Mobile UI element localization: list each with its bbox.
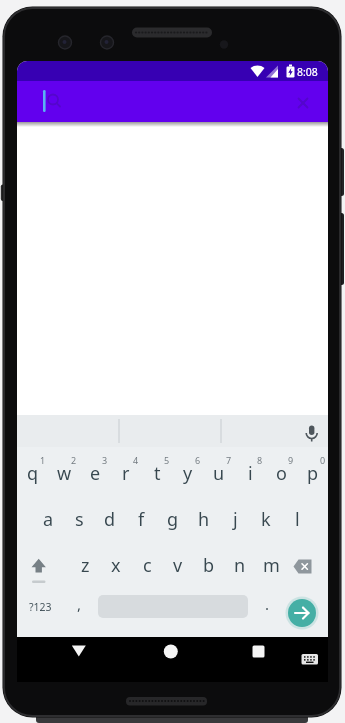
staticText: u — [213, 461, 225, 486]
staticText: 8 — [257, 454, 263, 466]
staticText: s — [75, 507, 84, 532]
staticText: j — [233, 507, 238, 532]
staticText: r — [122, 461, 130, 486]
staticText: w — [57, 461, 72, 486]
button[interactable]: u — [189, 453, 249, 493]
staticText: l — [295, 507, 300, 532]
staticText: . — [265, 594, 270, 614]
button[interactable]: o — [251, 453, 311, 493]
staticText: 1 — [40, 454, 46, 466]
staticText: f — [138, 507, 145, 532]
staticText: d — [104, 507, 116, 532]
staticText: i — [248, 461, 253, 486]
staticText: 6 — [195, 454, 201, 466]
button[interactable]: b — [179, 545, 239, 585]
button[interactable]: f — [111, 499, 171, 539]
button[interactable]: , — [49, 584, 109, 624]
button[interactable]: s — [49, 499, 109, 539]
button[interactable]: ?123 — [17, 587, 70, 627]
staticText: ?123 — [29, 600, 52, 614]
button[interactable]: e — [65, 453, 125, 493]
staticText: 0 — [320, 454, 326, 466]
button[interactable] — [291, 91, 315, 115]
staticText: p — [307, 461, 319, 486]
button[interactable] — [287, 550, 321, 580]
staticText: k — [261, 507, 271, 532]
button[interactable]: r — [96, 453, 156, 493]
button[interactable] — [298, 647, 322, 671]
staticText: o — [276, 461, 287, 486]
button[interactable]: h — [174, 499, 234, 539]
button[interactable] — [17, 81, 328, 122]
button[interactable]: v — [148, 545, 208, 585]
button[interactable]: w — [34, 453, 94, 493]
staticText: 5 — [164, 454, 170, 466]
staticText: n — [234, 553, 246, 578]
button[interactable]: y — [158, 453, 218, 493]
button[interactable] — [299, 419, 325, 445]
button[interactable] — [154, 639, 188, 665]
button[interactable] — [62, 639, 96, 665]
staticText: c — [143, 553, 152, 578]
staticText: y — [183, 461, 193, 486]
button[interactable]: z — [55, 545, 115, 585]
staticText: a — [43, 507, 54, 532]
button[interactable]: t — [127, 453, 187, 493]
staticText: b — [203, 553, 215, 578]
button[interactable]: d — [80, 499, 140, 539]
button[interactable] — [288, 599, 316, 627]
button[interactable]: c — [117, 545, 177, 585]
staticText: e — [90, 461, 101, 486]
staticText: 9 — [288, 454, 294, 466]
staticText: , — [77, 594, 82, 614]
staticText: g — [167, 507, 179, 532]
button[interactable] — [23, 550, 55, 580]
staticText: 8:08 — [297, 65, 318, 79]
button[interactable]: i — [220, 453, 280, 493]
button[interactable]: l — [267, 499, 327, 539]
button[interactable]: g — [143, 499, 203, 539]
button[interactable]: m — [241, 545, 301, 585]
staticText: x — [111, 553, 121, 578]
staticText: z — [81, 553, 90, 578]
staticText: t — [154, 461, 161, 486]
staticText: m — [263, 553, 280, 578]
button[interactable]: q — [17, 453, 63, 493]
button[interactable] — [236, 639, 270, 665]
staticText: 4 — [133, 454, 139, 466]
staticText: q — [27, 461, 39, 486]
button[interactable]: x — [86, 545, 146, 585]
button[interactable]: p — [283, 453, 328, 493]
button[interactable]: a — [18, 499, 78, 539]
staticText: 3 — [102, 454, 108, 466]
button[interactable]: j — [205, 499, 265, 539]
button[interactable]: . — [237, 584, 297, 624]
staticText: v — [173, 553, 183, 578]
staticText: h — [198, 507, 210, 532]
staticText: 7 — [226, 454, 232, 466]
button[interactable]: k — [236, 499, 296, 539]
staticText: 2 — [71, 454, 77, 466]
button[interactable]: n — [210, 545, 270, 585]
